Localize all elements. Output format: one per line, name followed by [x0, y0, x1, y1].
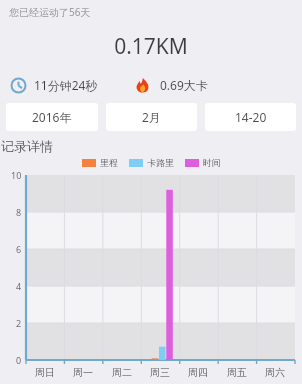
staticText: 周一 — [73, 366, 93, 379]
staticText: 您已经运动了56天 — [9, 5, 91, 19]
staticText: 8 — [16, 206, 22, 218]
staticText: 周四 — [188, 366, 208, 379]
button[interactable]: 2016年 — [6, 103, 98, 131]
staticText: 0.17KM — [0, 32, 302, 61]
staticText: 6 — [16, 243, 22, 255]
button[interactable]: 14-20 — [205, 103, 296, 131]
staticText: 0.69大卡 — [160, 77, 208, 93]
staticText: 11分钟24秒 — [34, 77, 98, 93]
staticText: 记录详情 — [1, 138, 53, 154]
staticText: 里程 — [100, 157, 118, 168]
staticText: 卡路里 — [147, 157, 174, 168]
staticText: 2月 — [142, 109, 161, 125]
button[interactable]: 2月 — [106, 103, 197, 131]
staticText: 周六 — [265, 366, 285, 379]
other: Calories — [134, 77, 151, 94]
staticText: 2 — [16, 317, 22, 329]
staticText: 周五 — [227, 366, 247, 379]
other: Duration — [10, 77, 27, 94]
other: Weekly activity chart — [0, 171, 302, 384]
staticText: 周日 — [35, 366, 55, 379]
staticText: 2016年 — [32, 109, 72, 125]
staticText: 14-20 — [235, 109, 267, 125]
staticText: 周二 — [112, 366, 132, 379]
staticText: 0 — [16, 354, 22, 366]
staticText: 10 — [11, 169, 22, 181]
staticText: 周三 — [150, 366, 170, 379]
staticText: 时间 — [203, 157, 221, 168]
staticText: 4 — [16, 280, 22, 292]
